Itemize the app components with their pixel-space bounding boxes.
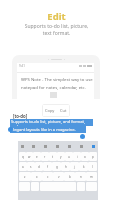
button[interactable]: b — [64, 172, 75, 181]
staticText: z — [24, 175, 26, 179]
staticText: l — [92, 165, 93, 169]
staticText: d — [38, 165, 40, 169]
button[interactable]: d — [35, 162, 43, 171]
staticText: m — [90, 175, 93, 179]
staticText: r — [44, 155, 46, 159]
staticText: notepad for notes, calendar, etc. — [21, 84, 86, 90]
staticText: g — [56, 165, 58, 169]
staticText: u — [68, 155, 70, 159]
button[interactable]: c — [42, 172, 53, 181]
button[interactable]: v — [53, 172, 64, 181]
staticText: s — [30, 165, 32, 169]
staticText: c — [47, 175, 49, 179]
button[interactable]: j — [70, 162, 79, 171]
button[interactable]: t — [49, 152, 57, 161]
staticText: y — [60, 155, 62, 159]
button[interactable]: e — [33, 152, 41, 161]
button[interactable]: n — [75, 172, 86, 181]
staticText: elegant layouts like in a magazine. — [11, 127, 76, 132]
staticText: Copy — [45, 108, 55, 113]
button[interactable]: z — [19, 172, 31, 181]
button[interactable]: f — [43, 162, 52, 171]
button[interactable]: m — [86, 172, 97, 181]
staticText: Supports to-do list, picture, and format… — [11, 119, 93, 126]
button[interactable]: p — [89, 152, 97, 161]
button[interactable]: u — [65, 152, 73, 161]
staticText: 9:41 — [19, 64, 25, 68]
button[interactable]: g — [52, 162, 61, 171]
button[interactable]: o — [81, 152, 89, 161]
button[interactable]: w — [26, 152, 33, 161]
button[interactable]: s — [27, 162, 35, 171]
button[interactable]: l — [88, 162, 97, 171]
staticText: w — [28, 155, 31, 159]
staticText: n — [80, 175, 82, 179]
staticText: f — [47, 165, 49, 169]
staticText: q — [22, 155, 24, 159]
button[interactable]: Cut — [59, 107, 68, 114]
button[interactable]: x — [31, 172, 42, 181]
staticText: j — [74, 165, 75, 169]
staticText: Edit — [0, 10, 113, 23]
staticText: p — [92, 155, 94, 159]
staticText: WPS Note - The simplest way to use — [21, 76, 93, 82]
button[interactable]: a — [19, 162, 27, 171]
staticText: o — [84, 155, 86, 159]
button[interactable]: r — [41, 152, 49, 161]
staticText: v — [58, 175, 60, 179]
button[interactable]: q — [19, 152, 26, 161]
staticText: Supports to-do list, picture, text forma… — [0, 23, 113, 37]
staticText: Cut — [60, 108, 67, 113]
button[interactable]: k — [79, 162, 88, 171]
staticText: a — [22, 165, 24, 169]
staticText: t — [52, 155, 54, 159]
button[interactable]: y — [57, 152, 65, 161]
staticText: i — [77, 155, 78, 159]
staticText: h — [65, 165, 67, 169]
button[interactable]: h — [61, 162, 70, 171]
button[interactable]: Copy — [44, 107, 56, 114]
staticText: x — [36, 175, 38, 179]
staticText: [to-do] — [13, 113, 28, 119]
button[interactable]: i — [73, 152, 81, 161]
staticText: k — [83, 165, 85, 169]
staticText: b — [69, 175, 71, 179]
staticText: e — [36, 155, 38, 159]
